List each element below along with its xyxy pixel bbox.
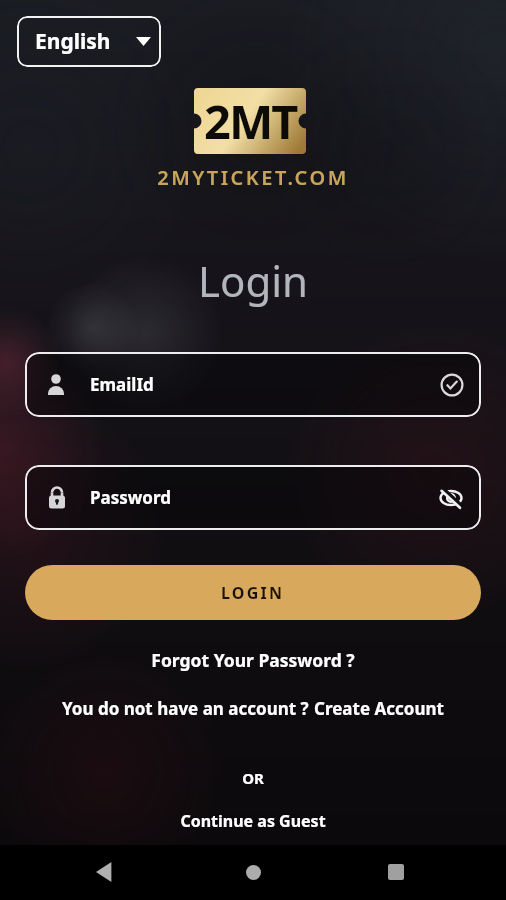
staticText: You do not have an account ? [62,697,314,720]
button[interactable]: Continue as Guest [0,810,506,832]
staticText: OR [0,768,506,788]
staticText: 2MYTICKET.COM [0,164,506,191]
button[interactable] [81,848,129,896]
button[interactable]: LOGIN [25,565,481,620]
button[interactable] [229,848,277,896]
staticText: English [35,27,111,56]
staticText: LOGIN [221,582,285,604]
button[interactable]: English [17,16,161,67]
button[interactable] [372,848,420,896]
staticText: EmailId [90,373,154,396]
button[interactable]: EmailId [25,352,481,417]
button[interactable]: Password [25,465,481,530]
staticText: 2MT [204,89,297,153]
staticText: Password [90,486,171,509]
staticText: Login [0,252,506,309]
button[interactable]: Forgot Your Password ? [0,648,506,672]
button[interactable]: Create Account [314,697,444,720]
